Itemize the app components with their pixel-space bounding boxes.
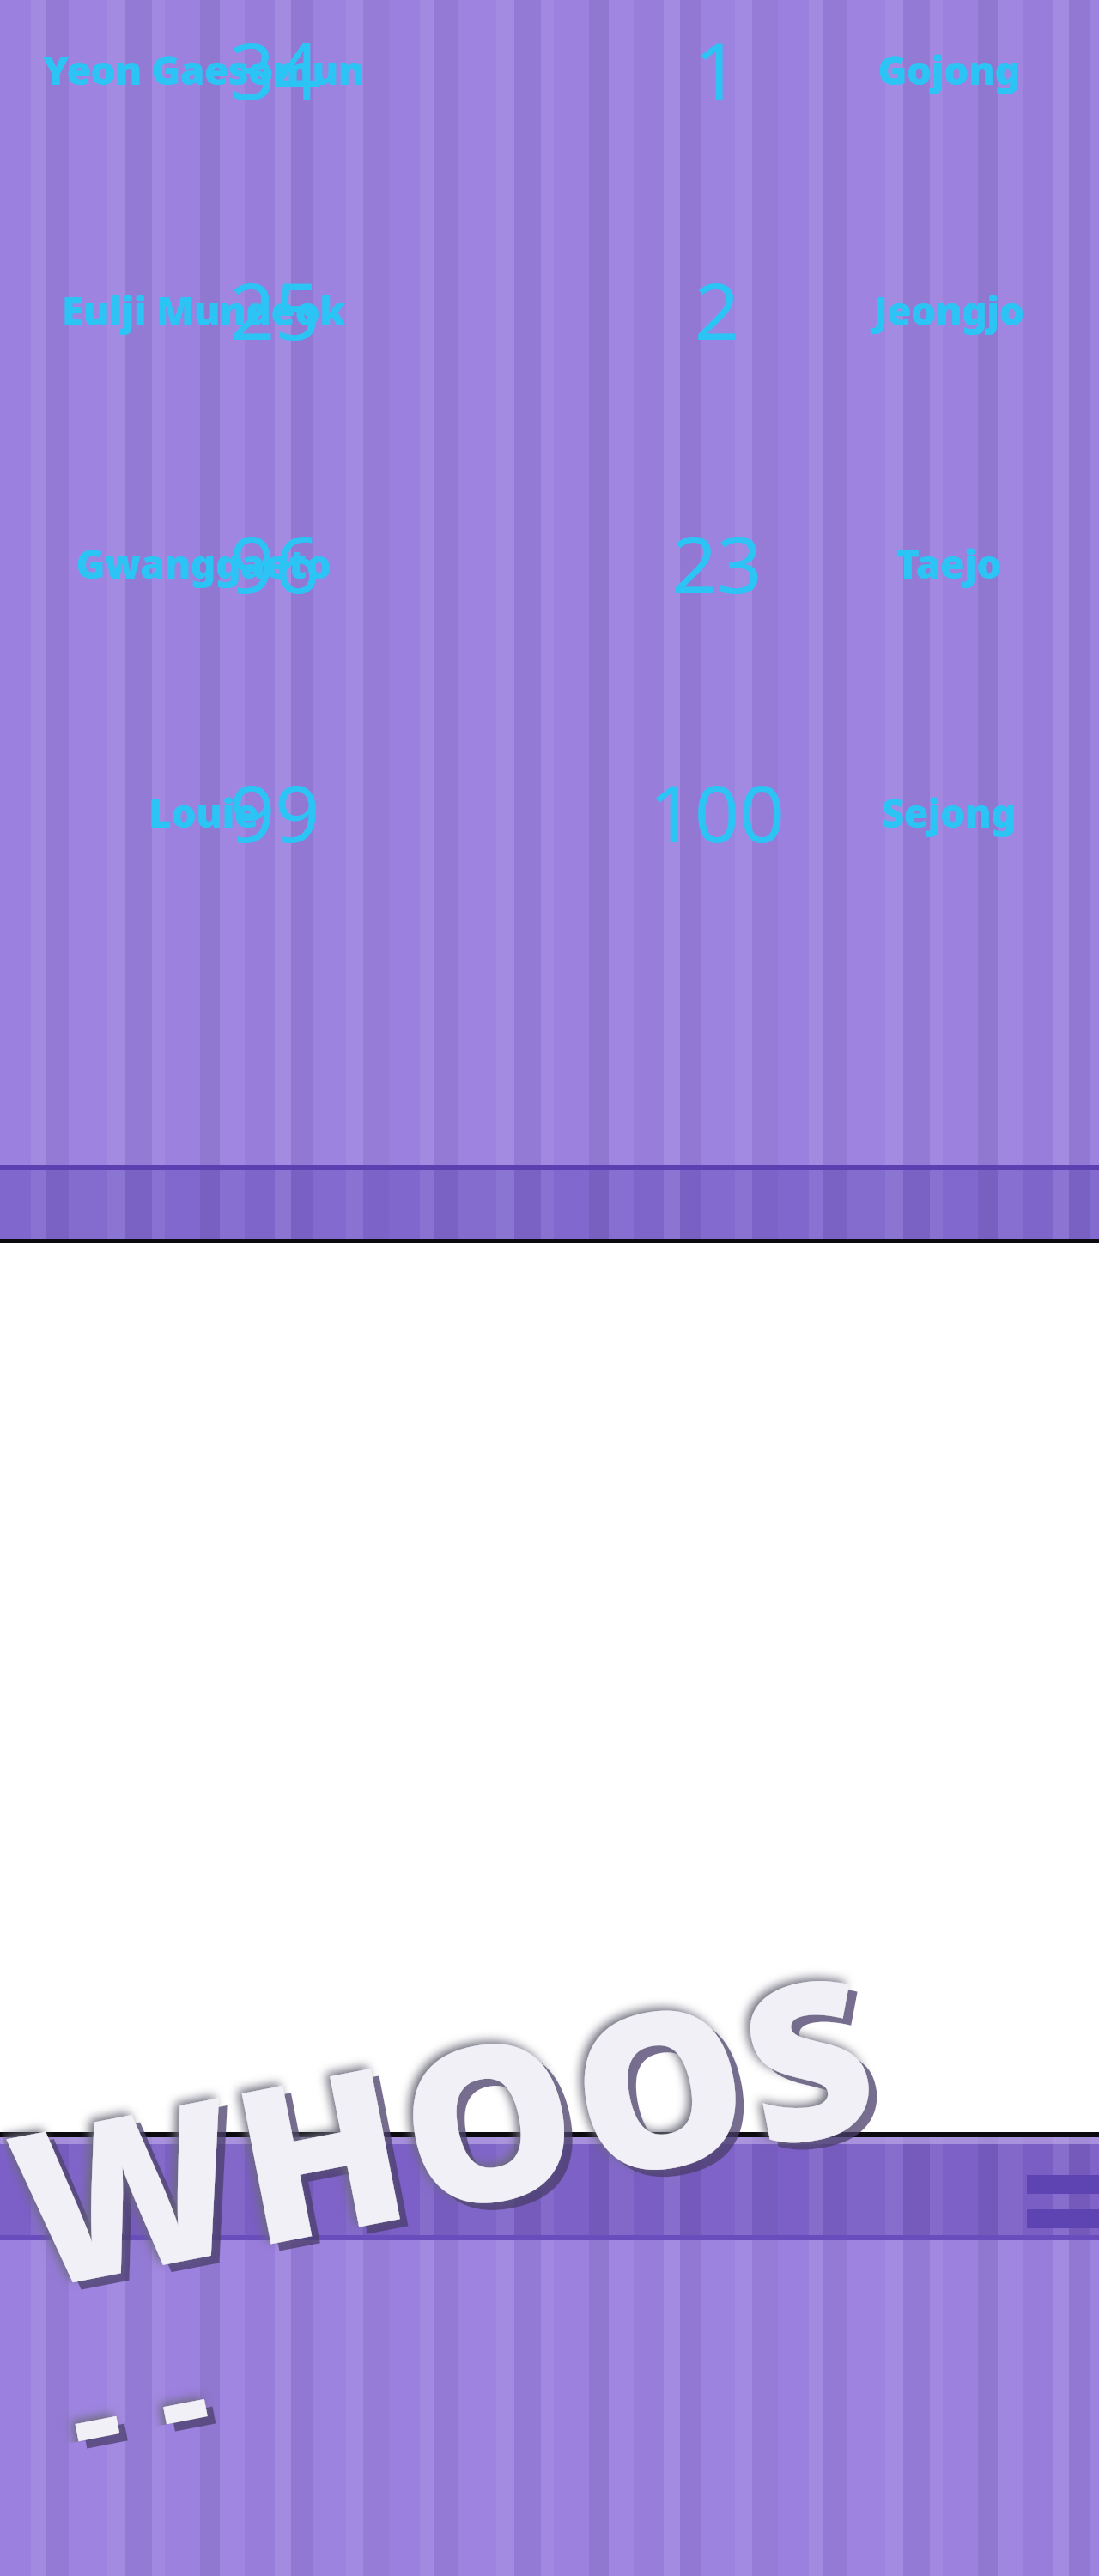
button[interactable]: 99 — [0, 758, 549, 853]
staticText: 1 — [549, 15, 884, 110]
button[interactable]: Louie — [0, 786, 407, 837]
button[interactable]: Yeon Gaesomun — [0, 43, 407, 94]
button[interactable]: Taejo — [798, 537, 1099, 588]
staticText: Louie — [0, 786, 407, 837]
button[interactable]: 25 — [0, 256, 549, 350]
button[interactable]: 100 — [549, 758, 884, 853]
staticText: Gwanggaeto — [0, 537, 407, 588]
staticText: Jeongjo — [798, 283, 1099, 335]
staticText: WHOOSH — [0, 1899, 964, 2452]
staticText: 23 — [549, 509, 884, 604]
staticText: 96 — [0, 509, 549, 604]
staticText: 2 — [549, 256, 884, 350]
button[interactable]: 2 — [549, 256, 884, 350]
button[interactable]: 1 — [549, 15, 884, 110]
staticText: WHOOSH — [0, 1892, 956, 2445]
button[interactable]: 23 — [549, 509, 884, 604]
staticText: Eulji Mundeok — [0, 283, 407, 335]
button[interactable]: Jeongjo — [798, 283, 1099, 335]
button[interactable]: Eulji Mundeok — [0, 283, 407, 335]
button[interactable]: 96 — [0, 509, 549, 604]
staticText: Taejo — [798, 537, 1099, 588]
staticText: Yeon Gaesomun — [0, 43, 407, 94]
staticText: 100 — [549, 758, 884, 853]
staticText: 25 — [0, 256, 549, 350]
staticText: 99 — [0, 758, 549, 853]
staticText: 34 — [0, 15, 549, 110]
staticText: Gojong — [798, 43, 1099, 94]
button[interactable]: Sejong — [798, 786, 1099, 837]
other: Whoosh sound effect — [17, 1975, 927, 2361]
button[interactable]: 34 — [0, 15, 549, 110]
button[interactable]: Gwanggaeto — [0, 537, 407, 588]
button[interactable]: Gojong — [798, 43, 1099, 94]
staticText: Sejong — [798, 786, 1099, 837]
